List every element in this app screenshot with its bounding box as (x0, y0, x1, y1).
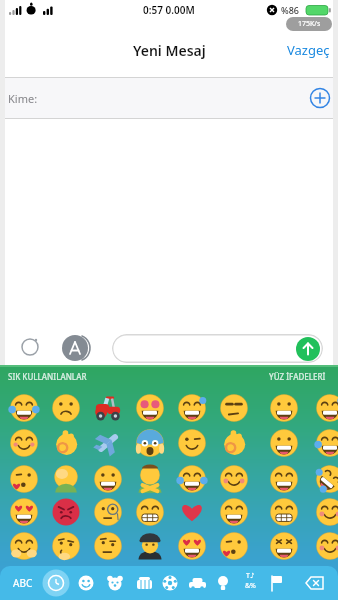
button[interactable] (216, 529, 252, 563)
staticText: YÜZ İFADELERİ (269, 371, 326, 382)
button[interactable] (90, 529, 126, 563)
button[interactable] (73, 570, 99, 596)
button[interactable] (157, 570, 183, 596)
button[interactable]: ABC (8, 572, 38, 594)
button[interactable] (301, 570, 327, 596)
button[interactable] (266, 462, 302, 496)
button[interactable] (90, 391, 126, 425)
button[interactable] (48, 391, 84, 425)
button[interactable] (309, 87, 331, 109)
button[interactable] (312, 495, 338, 529)
button[interactable] (174, 426, 210, 460)
button[interactable] (174, 391, 210, 425)
button[interactable] (48, 462, 84, 496)
button[interactable] (184, 570, 210, 596)
button[interactable] (216, 462, 252, 496)
button[interactable] (132, 495, 168, 529)
button[interactable]: T♪ (241, 571, 259, 595)
button[interactable] (174, 495, 210, 529)
button[interactable] (6, 391, 42, 425)
button[interactable] (6, 495, 42, 529)
button[interactable] (312, 426, 338, 460)
button[interactable] (174, 462, 210, 496)
button[interactable] (6, 426, 42, 460)
staticText: Kime: (8, 91, 38, 106)
button[interactable] (312, 391, 338, 425)
staticText: 175K/s (298, 19, 321, 29)
button[interactable] (312, 529, 338, 563)
button[interactable] (43, 570, 69, 596)
button[interactable] (132, 391, 168, 425)
button[interactable] (266, 426, 302, 460)
staticText: &% (245, 581, 256, 591)
button[interactable] (216, 391, 252, 425)
button[interactable] (132, 462, 168, 496)
button[interactable] (132, 529, 168, 563)
button[interactable] (266, 529, 302, 563)
staticText: Vazgeç (287, 41, 330, 59)
button[interactable] (90, 495, 126, 529)
button[interactable]: Vazgeç (287, 45, 330, 63)
button[interactable] (90, 462, 126, 496)
button[interactable] (216, 495, 252, 529)
button[interactable] (48, 529, 84, 563)
staticText: SIK KULLANILANLAR (8, 371, 87, 382)
button[interactable] (174, 529, 210, 563)
button[interactable] (48, 426, 84, 460)
button[interactable] (312, 462, 338, 496)
button[interactable] (48, 495, 84, 529)
staticText: 0:57 0.00M (143, 3, 195, 17)
button[interactable] (264, 570, 290, 596)
button[interactable] (19, 336, 41, 358)
button[interactable] (266, 495, 302, 529)
button[interactable] (266, 391, 302, 425)
button[interactable] (90, 426, 126, 460)
button[interactable] (296, 337, 320, 361)
staticText: ABC (13, 576, 33, 590)
button[interactable] (6, 462, 42, 496)
staticText: %86 (281, 4, 299, 16)
staticText: Yeni Mesaj (133, 41, 206, 60)
button[interactable] (131, 570, 157, 596)
button[interactable] (6, 529, 42, 563)
button[interactable] (216, 426, 252, 460)
button[interactable] (132, 426, 168, 460)
staticText: T♪ (246, 571, 255, 581)
button[interactable] (102, 570, 128, 596)
button[interactable] (62, 334, 90, 362)
button[interactable] (210, 570, 236, 596)
